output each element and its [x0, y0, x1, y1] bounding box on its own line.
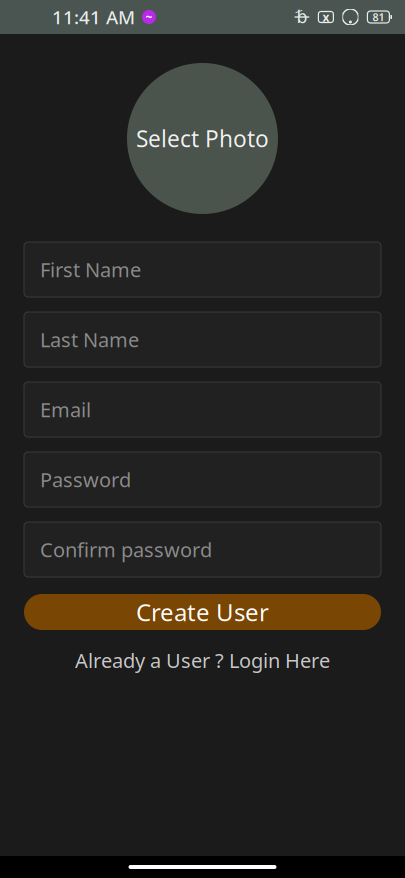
button[interactable]: Select Photo [127, 63, 278, 214]
button[interactable]: Password [24, 452, 381, 507]
staticText: Already a User ? Login Here [75, 647, 330, 674]
staticText: 11:41 AM [52, 5, 135, 29]
button[interactable]: Last Name [24, 312, 381, 367]
staticText: Password [40, 466, 131, 493]
staticText: ␢ [296, 7, 307, 27]
button[interactable]: Email [24, 382, 381, 437]
button[interactable]: First Name [24, 242, 381, 297]
button[interactable]: Already a User ? Login Here [75, 647, 330, 674]
button[interactable]: Create User [24, 594, 381, 630]
staticText: x [322, 9, 329, 25]
staticText: Create User [136, 596, 269, 628]
staticText: Last Name [40, 326, 139, 353]
staticText: ~ [145, 9, 152, 25]
staticText: Confirm password [40, 536, 212, 563]
staticText: Select Photo [136, 123, 269, 153]
staticText: Email [40, 396, 91, 423]
button[interactable]: Confirm password [24, 522, 381, 577]
staticText: First Name [40, 256, 141, 283]
staticText: 81 [372, 10, 384, 24]
